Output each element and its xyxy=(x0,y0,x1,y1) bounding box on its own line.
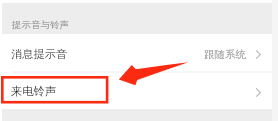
other: Open xyxy=(256,50,261,59)
staticText: 提示音与铃声 xyxy=(12,19,69,31)
other: Open xyxy=(256,88,261,97)
staticText: 跟随系统 xyxy=(204,48,246,61)
button[interactable]: 消息提示音 xyxy=(2,34,272,71)
staticText: 来电铃声 xyxy=(11,84,56,98)
button[interactable]: 来电铃声 xyxy=(2,72,272,109)
staticText: 消息提示音 xyxy=(11,47,68,61)
